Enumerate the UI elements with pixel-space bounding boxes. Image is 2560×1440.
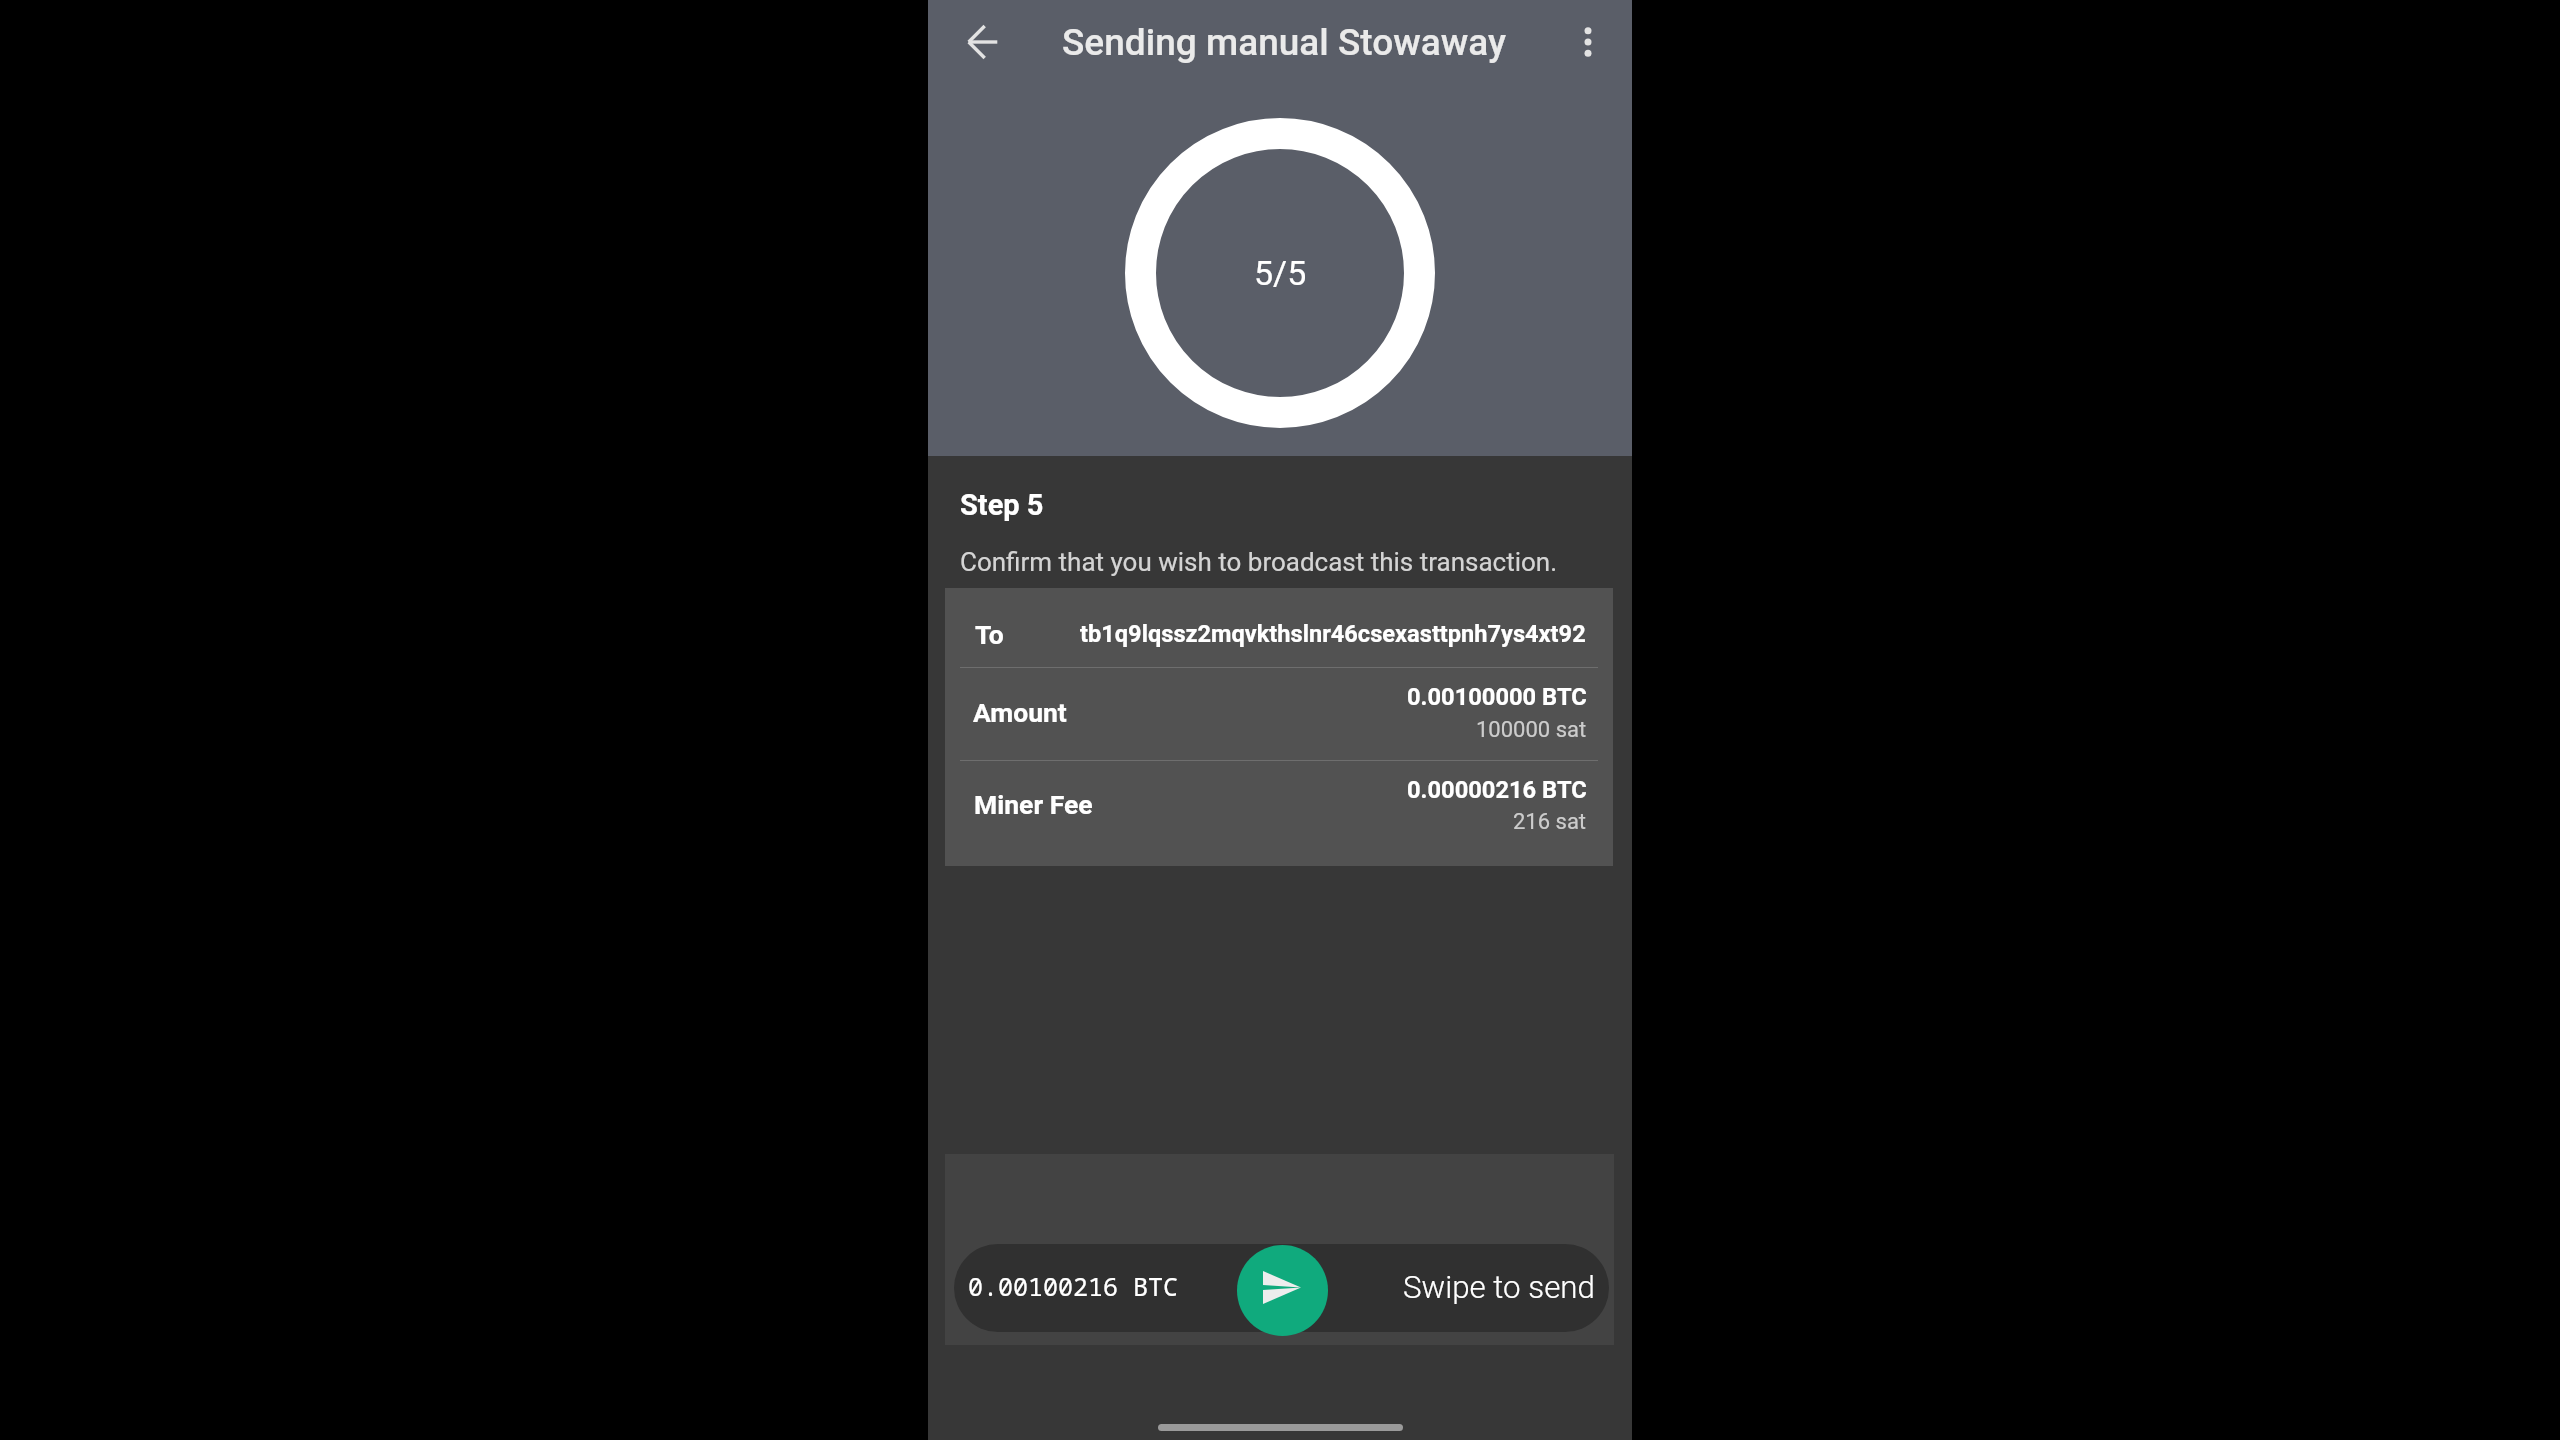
staticText: 216 sat <box>1513 809 1587 835</box>
staticText: Confirm that you wish to broadcast this … <box>960 547 1558 577</box>
staticText: 5/5 <box>1254 253 1307 293</box>
staticText: 0.00100000 BTC <box>1407 683 1587 711</box>
button[interactable]: Back <box>941 0 1025 84</box>
button[interactable]: 0.00100216 BTC <box>954 1244 1609 1332</box>
staticText: To <box>975 619 1004 650</box>
staticText: Swipe to send <box>1403 1269 1595 1306</box>
button[interactable]: More options <box>1546 0 1630 84</box>
staticText: Miner Fee <box>974 789 1093 820</box>
button[interactable]: Send <box>1237 1245 1328 1336</box>
staticText: tb1q9lqssz2mqvkthslnr46csexasttpnh7ys4xt… <box>1080 620 1586 648</box>
staticText: 0.00100216 BTC <box>968 1269 1179 1303</box>
staticText: Amount <box>973 697 1067 728</box>
staticText: 100000 sat <box>1476 717 1587 743</box>
staticText: Sending manual Stowaway <box>1062 21 1507 64</box>
staticText: 0.00000216 BTC <box>1407 776 1587 804</box>
staticText: Step 5 <box>960 488 1044 522</box>
